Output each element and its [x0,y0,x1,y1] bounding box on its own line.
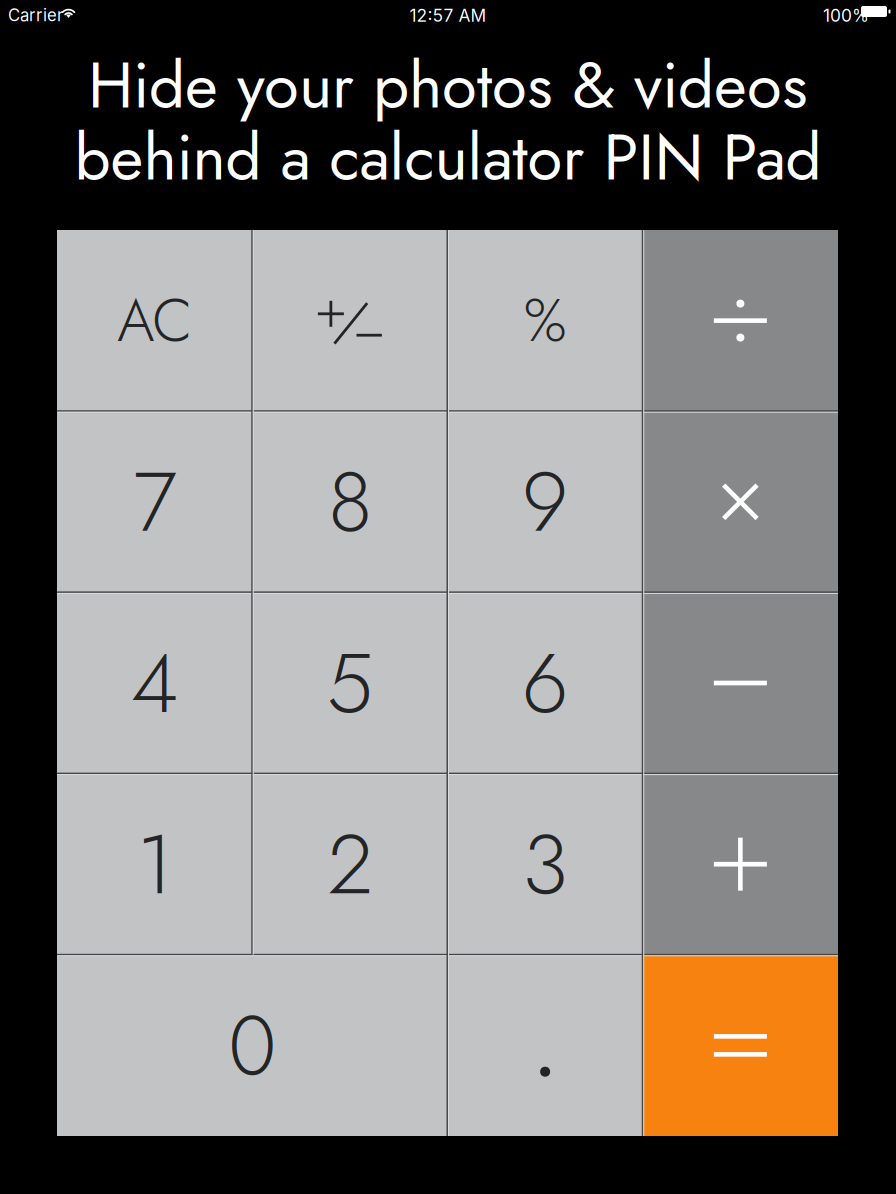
staticText: AC [117,278,192,363]
staticText: 100% [823,5,869,26]
staticText: 7 [133,442,176,562]
button[interactable]: % [447,230,643,411]
staticText: Carrier [8,5,63,25]
button[interactable]: 9 [447,411,643,592]
staticText: 2 [327,804,372,924]
button[interactable]: 5 [252,592,447,774]
button[interactable]: plus minus [252,230,447,411]
button[interactable]: multiply [643,411,838,592]
button[interactable]: 8 [252,411,447,592]
button[interactable]: 6 [447,592,643,774]
staticText: 6 [522,623,569,743]
staticText: 9 [522,442,569,562]
staticText: 5 [326,623,373,743]
button[interactable]: 2 [252,774,447,955]
staticText: 3 [522,804,568,924]
staticText: % [524,278,567,363]
button[interactable]: divide [643,230,838,411]
button[interactable]: minus [643,592,838,774]
staticText: 0 [228,985,276,1106]
button[interactable]: decimal point [447,955,643,1136]
button[interactable]: 0 [57,955,447,1136]
button[interactable]: AC [57,230,252,411]
button[interactable]: 4 [57,592,252,774]
button[interactable]: 1 [57,774,252,955]
button[interactable]: equals [643,955,838,1136]
staticText: 8 [328,442,372,562]
staticText: 1 [137,804,173,924]
staticText: Hide your photos & videos [88,40,808,131]
button[interactable]: 3 [447,774,643,955]
staticText: 12:57 AM [409,5,486,26]
button[interactable]: 7 [57,411,252,592]
staticText: 4 [131,623,179,743]
button[interactable]: plus [643,774,838,955]
staticText: behind a calculator PIN Pad [74,112,821,203]
